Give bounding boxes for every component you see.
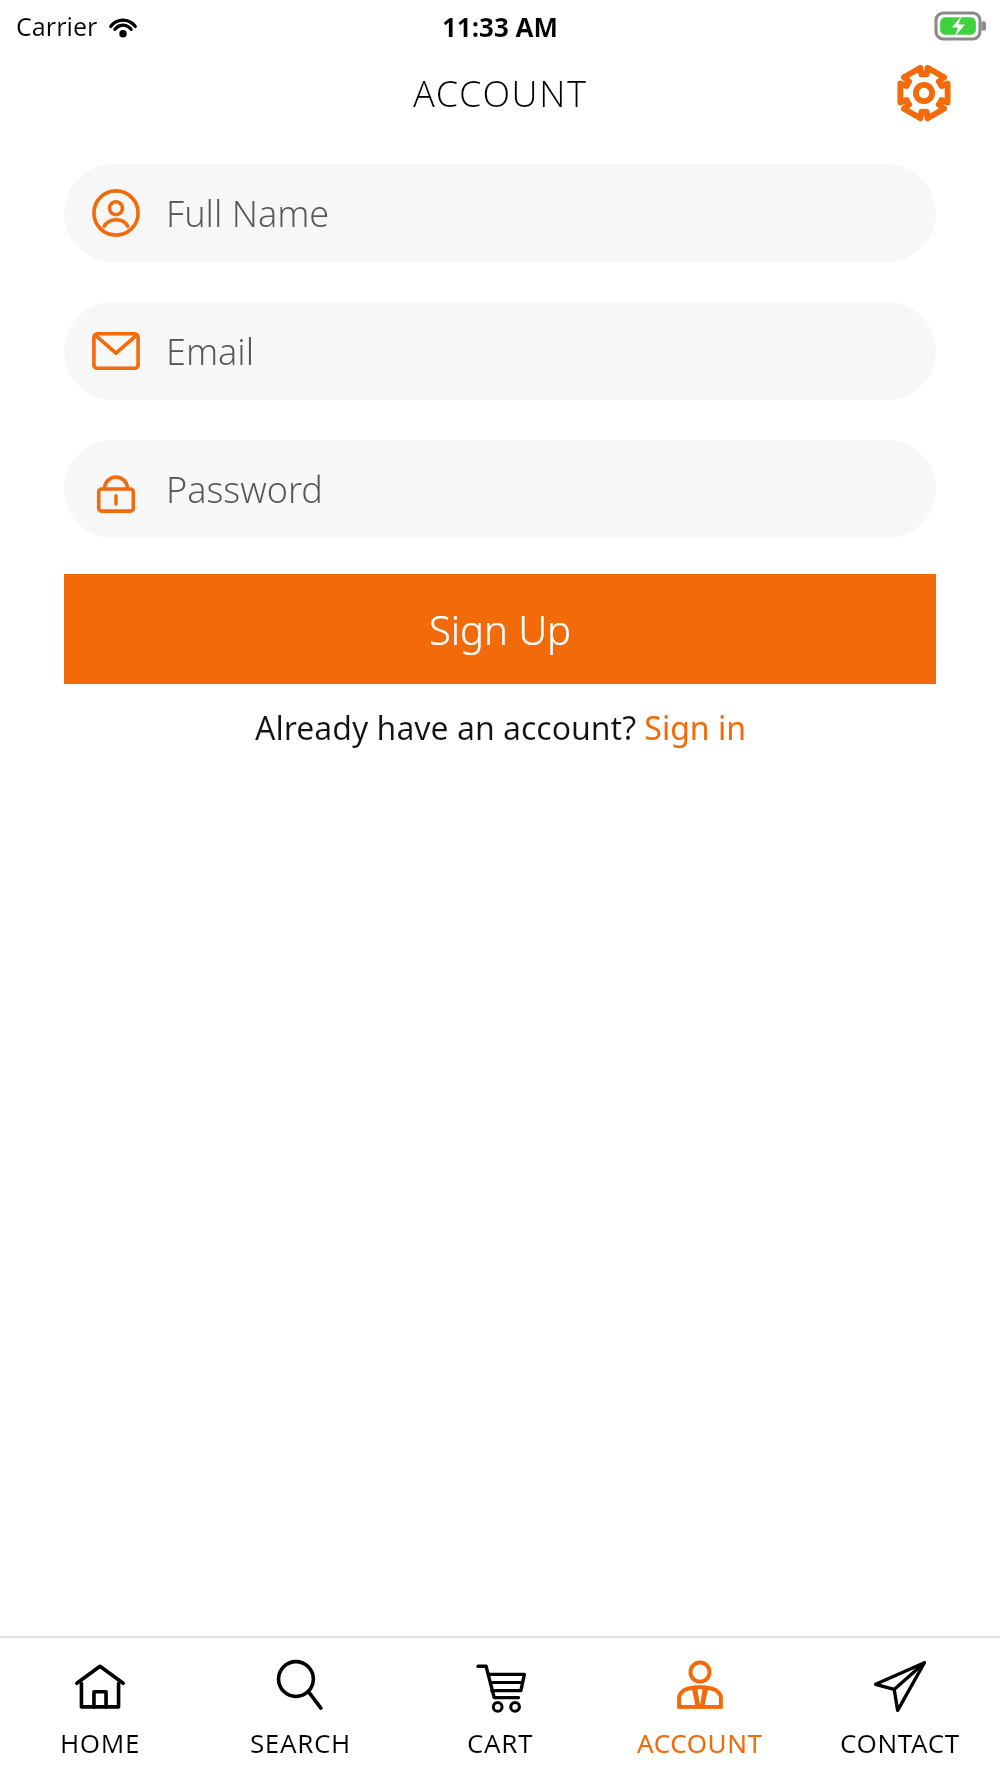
- button[interactable]: Already have an account? Sign in: [0, 706, 1000, 750]
- staticText: Password: [166, 465, 323, 514]
- button[interactable]: Sign Up: [64, 574, 936, 684]
- staticText: HOME: [60, 1725, 141, 1760]
- button[interactable]: SEARCH: [200, 1638, 400, 1778]
- staticText: Already have an account? Sign in: [255, 706, 746, 750]
- button[interactable]: HOME: [0, 1638, 200, 1778]
- staticText: Sign Up: [429, 602, 572, 656]
- button[interactable]: Email: [64, 302, 936, 400]
- button[interactable]: CART: [400, 1638, 600, 1778]
- button[interactable]: Full Name: [64, 164, 936, 262]
- staticText: ACCOUNT: [637, 1725, 763, 1760]
- staticText: SEARCH: [250, 1725, 351, 1760]
- staticText: Full Name: [166, 189, 330, 238]
- staticText: Email: [166, 327, 255, 376]
- button[interactable]: CONTACT: [800, 1638, 1000, 1778]
- staticText: Carrier: [16, 9, 98, 43]
- button[interactable]: Settings: [896, 65, 952, 121]
- staticText: 11:33 AM: [442, 9, 559, 44]
- staticText: CONTACT: [840, 1725, 960, 1760]
- staticText: ACCOUNT: [413, 69, 588, 118]
- button[interactable]: ACCOUNT: [600, 1638, 800, 1778]
- button[interactable]: Password: [64, 440, 936, 538]
- staticText: CART: [467, 1725, 534, 1760]
